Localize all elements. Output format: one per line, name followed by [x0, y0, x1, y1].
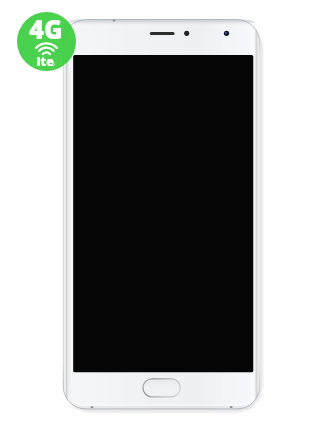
staticText: 4G [29, 12, 63, 47]
button[interactable]: 4G LTE network badge [17, 12, 76, 71]
staticText: lte [37, 52, 54, 70]
